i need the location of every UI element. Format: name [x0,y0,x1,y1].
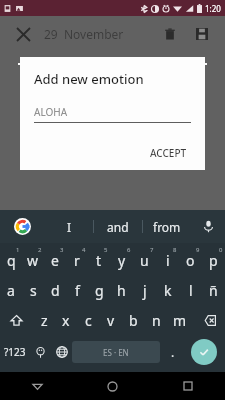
staticText: 1:20 [205,3,221,14]
staticText: 8 [173,246,177,254]
staticText: 7 [150,246,154,254]
staticText: 3 [60,246,64,254]
staticText: z [41,311,48,330]
staticText: 0 [219,246,223,254]
button[interactable]: I [45,210,93,243]
staticText: 29 November [44,26,124,42]
button[interactable]: q [0,245,22,275]
staticText: from [153,219,181,235]
staticText: o [186,251,195,270]
staticText: l [189,281,193,300]
button[interactable]: t [88,245,110,275]
staticText: 6 [127,246,131,254]
button[interactable]: Enter [191,339,217,365]
staticText: t [96,251,102,270]
button[interactable]: f [66,275,88,305]
staticText: Write something about it [60,73,166,85]
button[interactable]: p [202,245,225,275]
button[interactable]: from [143,210,191,243]
button[interactable]: Emoji [30,335,51,369]
button[interactable]: Delete [157,21,183,47]
staticText: e [51,251,59,270]
staticText: and [107,219,129,235]
staticText: g [95,281,104,300]
button[interactable]: Change language [51,335,72,369]
staticText: 1 [16,246,20,254]
staticText: j [143,281,147,300]
staticText: h [117,281,126,300]
staticText: v [107,311,115,330]
staticText: i [166,251,170,270]
button[interactable]: Back [0,372,75,400]
button[interactable]: ACCEPT [146,142,191,164]
staticText: k [164,281,172,300]
button[interactable]: k [156,275,179,305]
staticText: ACCEPT [150,146,187,160]
button[interactable]: u [133,245,156,275]
button[interactable]: Recent apps [150,372,225,400]
staticText: c [85,311,92,330]
button[interactable]: n [145,305,168,335]
button[interactable]: x [55,305,77,335]
staticText: q [7,251,16,270]
staticText: Add new emotion [34,70,144,88]
button[interactable]: Save [189,21,215,47]
button[interactable]: s [22,275,44,305]
button[interactable]: ?123 [0,335,30,369]
button[interactable]: Home [75,372,150,400]
staticText: x [62,311,70,330]
button[interactable]: ñ [202,275,225,305]
button[interactable]: r [66,245,88,275]
staticText: f [75,281,80,300]
button[interactable]: a [0,275,22,305]
staticText: p [209,251,218,270]
button[interactable]: Shift [0,305,33,335]
staticText: w [27,251,39,270]
staticText: u [140,251,149,270]
button[interactable]: and [94,210,142,243]
staticText: 4 [82,246,86,254]
staticText: a [7,281,15,300]
staticText: y [118,251,126,270]
button[interactable]: j [133,275,156,305]
button[interactable]: Google [0,210,45,243]
button[interactable]: h [110,275,133,305]
button[interactable]: Voice input [191,210,225,243]
button[interactable]: v [99,305,122,335]
button[interactable]: Backspace [191,305,225,335]
button[interactable]: w [22,245,44,275]
staticText: ALOHA [34,105,68,119]
button[interactable]: y [110,245,133,275]
staticText: m [173,311,187,330]
staticText: ES · EN [103,347,129,358]
staticText: ?123 [4,345,26,359]
button[interactable]: l [179,275,202,305]
button[interactable]: Close [10,21,36,47]
staticText: s [30,281,37,300]
button[interactable]: g [88,275,110,305]
staticText: r [74,251,80,270]
staticText: I [67,219,72,235]
button[interactable]: ES · EN [72,341,160,363]
button[interactable]: d [44,275,66,305]
button[interactable]: e [44,245,66,275]
staticText: b [129,311,138,330]
button[interactable]: c [77,305,99,335]
button[interactable]: i [156,245,179,275]
button[interactable]: . [160,335,185,369]
staticText: d [51,281,60,300]
staticText: 2 [38,246,42,254]
staticText: 9 [196,246,200,254]
button[interactable]: b [122,305,145,335]
button[interactable]: o [179,245,202,275]
staticText: n [152,311,161,330]
button[interactable]: z [33,305,55,335]
staticText: . [171,344,175,360]
staticText: 5 [104,246,108,254]
staticText: ñ [209,281,218,300]
button[interactable]: m [168,305,191,335]
